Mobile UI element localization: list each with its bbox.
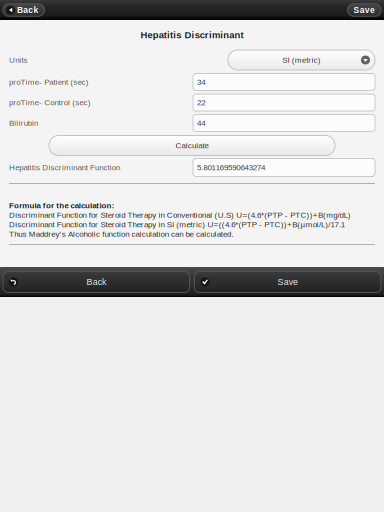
- button[interactable]: Save: [348, 4, 381, 16]
- staticText: Back: [17, 5, 38, 15]
- button[interactable]: Back: [3, 4, 44, 16]
- staticText: proTime- Control (sec): [9, 98, 91, 107]
- staticText: 22: [197, 98, 205, 107]
- staticText: Hepatitis Discriminant Function: [9, 163, 120, 172]
- staticText: Back: [87, 277, 106, 287]
- staticText: 5.801169590643274: [197, 163, 265, 172]
- staticText: proTime- Patient (sec): [9, 77, 89, 86]
- button[interactable]: Calculate: [49, 135, 335, 155]
- button[interactable]: Save: [194, 271, 381, 292]
- staticText: SI (metric): [282, 55, 321, 64]
- staticText: Hepatitis Discriminant: [140, 30, 244, 40]
- staticText: 34: [197, 77, 205, 86]
- staticText: Discriminant Function for Steroid Therap…: [9, 210, 351, 219]
- staticText: Formula for the calculation:: [9, 201, 115, 210]
- staticText: Thus Maddrey's Alcoholic function calcul…: [9, 230, 233, 238]
- staticText: Discriminant Function for Steroid Therap…: [9, 220, 345, 229]
- staticText: Bilirubin: [9, 118, 38, 127]
- button[interactable]: SI (metric): [228, 50, 375, 70]
- button[interactable]: Back: [3, 271, 189, 292]
- staticText: Units: [9, 55, 27, 64]
- staticText: Calculate: [175, 141, 208, 150]
- staticText: 44: [197, 118, 205, 127]
- staticText: Save: [278, 277, 298, 287]
- staticText: Save: [354, 5, 375, 15]
